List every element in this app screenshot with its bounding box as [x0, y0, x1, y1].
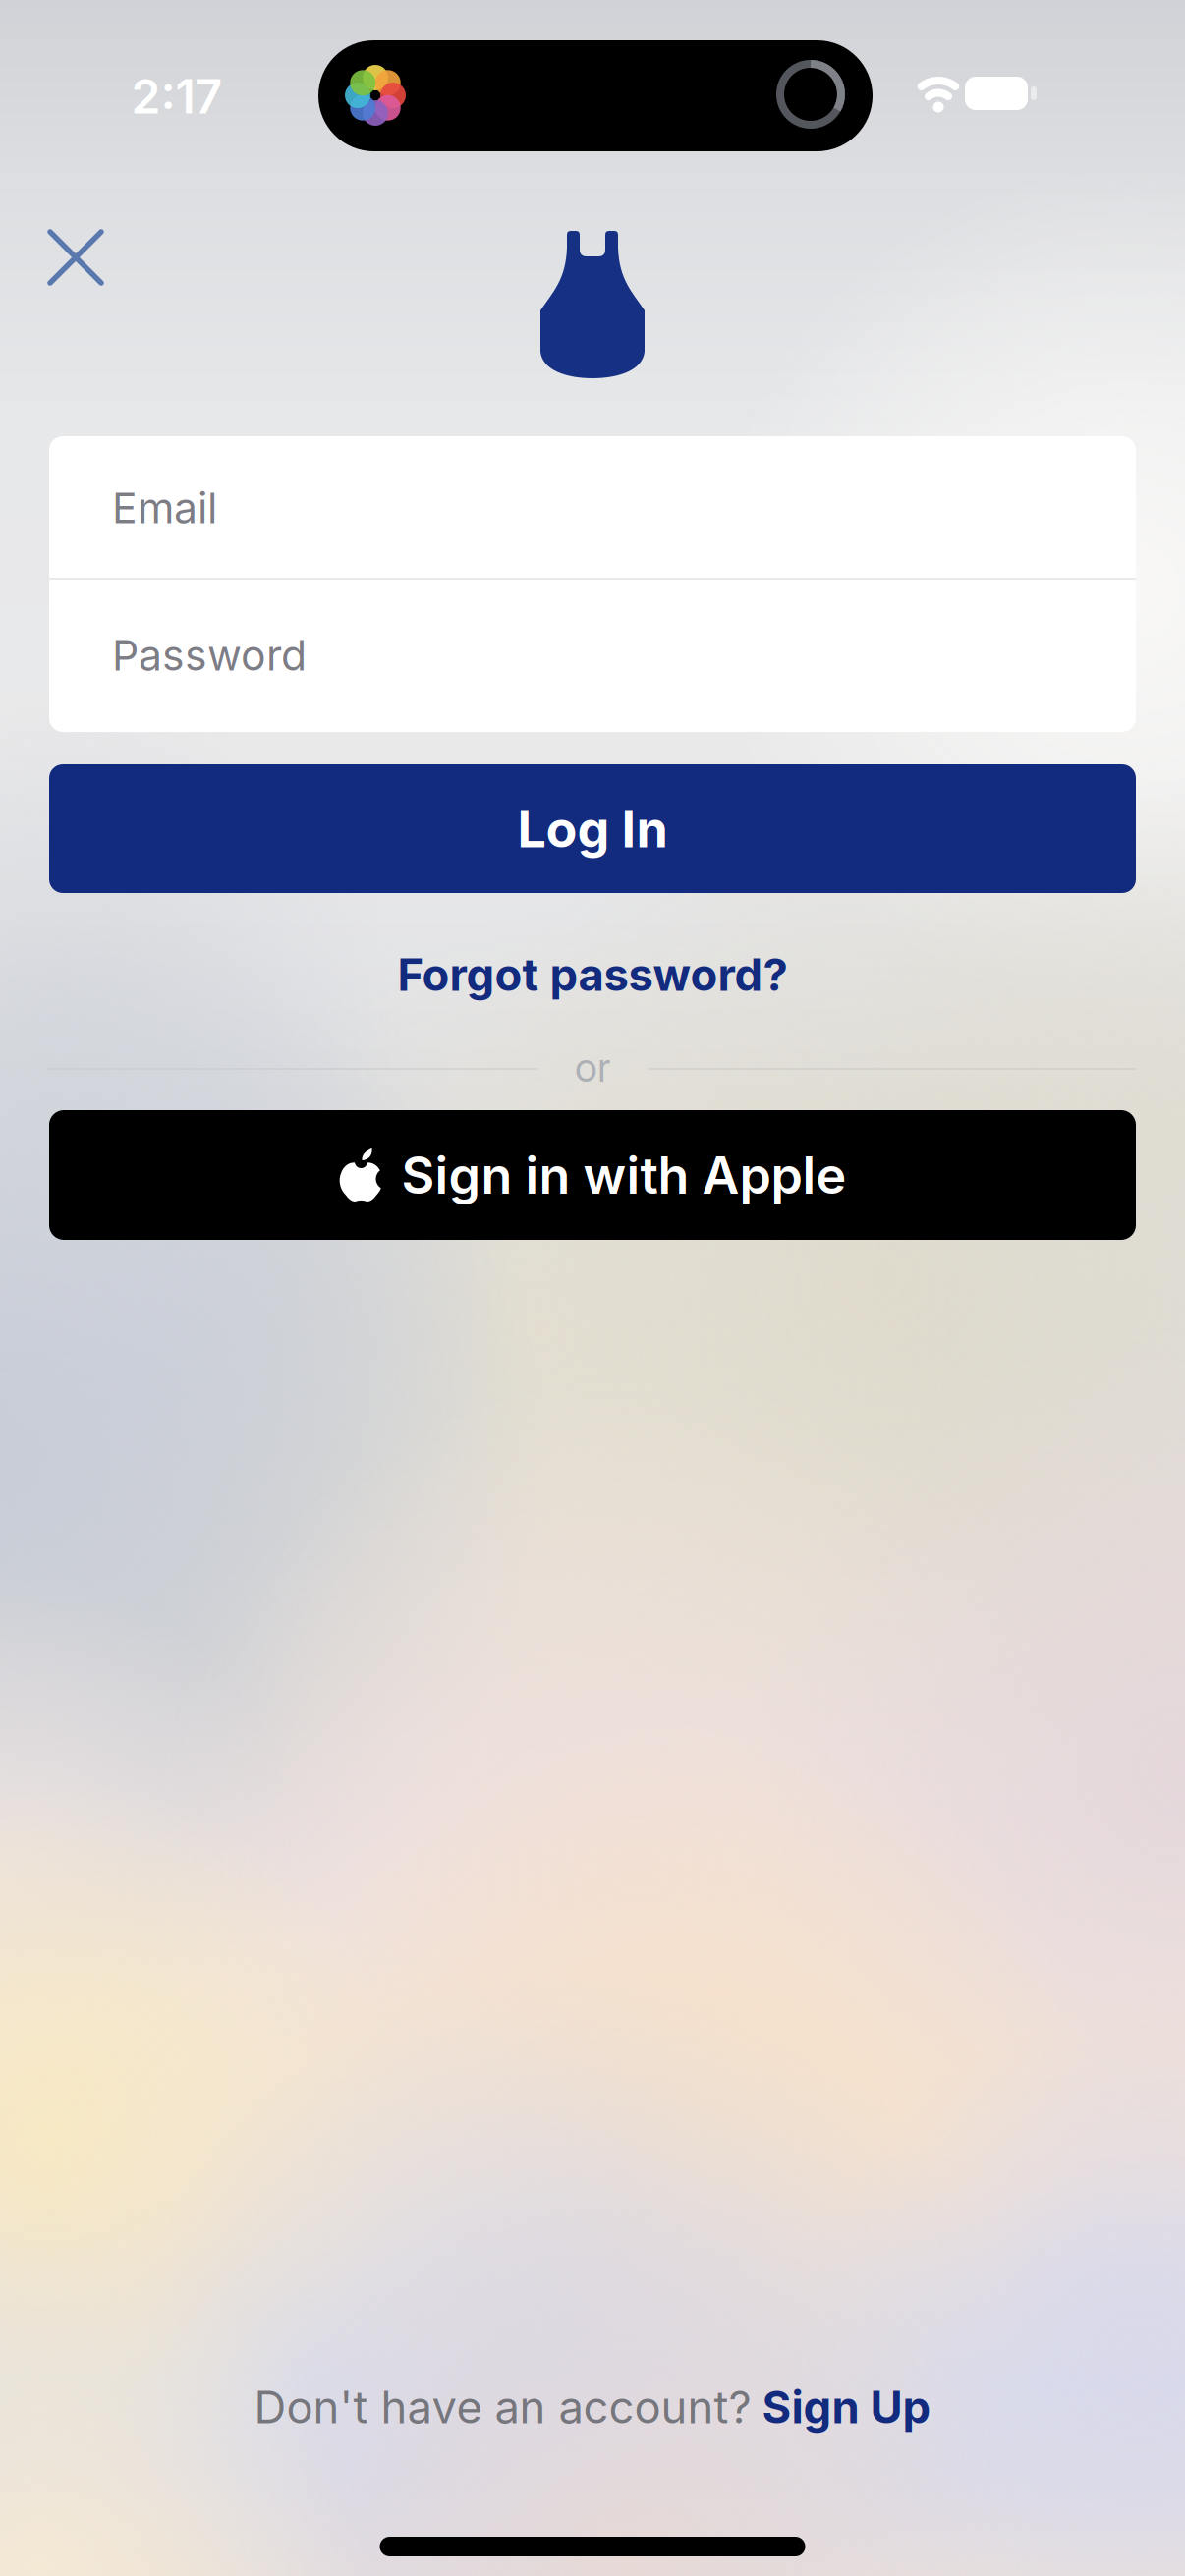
button[interactable]: Password: [112, 587, 1134, 724]
staticText: Don't have an account?: [254, 2381, 751, 2433]
button[interactable]: Forgot password?: [397, 948, 788, 1001]
staticText: Sign in with Apple: [401, 1145, 846, 1205]
staticText: Forgot password?: [397, 948, 788, 1001]
button[interactable]: Sign in with Apple: [49, 1110, 1136, 1240]
staticText: Email: [112, 483, 217, 533]
staticText: or: [575, 1043, 610, 1091]
button[interactable]: Email: [112, 439, 1134, 577]
staticText: Password: [112, 631, 307, 680]
button[interactable]: Log In: [49, 764, 1136, 893]
staticText: 2:17: [131, 68, 223, 124]
staticText: Log In: [517, 799, 668, 859]
button[interactable]: Sign Up: [762, 2381, 931, 2433]
button[interactable]: [44, 226, 107, 289]
staticText: Sign Up: [762, 2381, 931, 2433]
